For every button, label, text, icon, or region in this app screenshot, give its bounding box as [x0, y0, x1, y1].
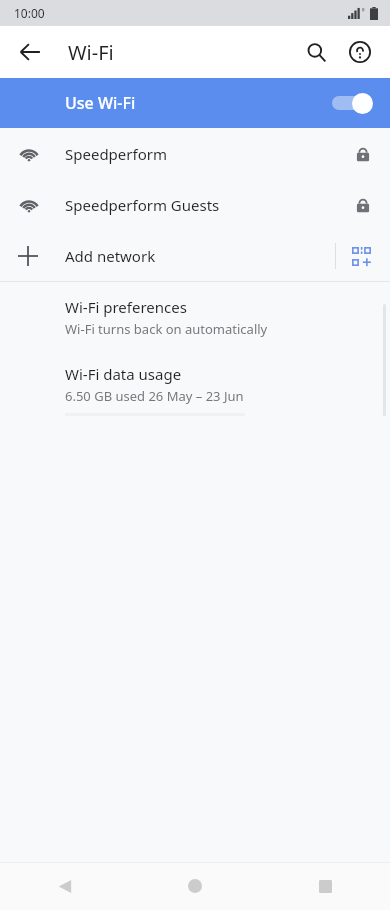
button[interactable]: Home [130, 862, 260, 910]
staticText: Use Wi-Fi [65, 92, 136, 114]
button[interactable]: Search [294, 30, 338, 74]
staticText: 6.50 GB used 26 May – 23 Jun [65, 387, 244, 405]
button[interactable]: Speedperform Guests [0, 179, 390, 230]
staticText: Speedperform [65, 144, 167, 164]
staticText: Wi-Fi turns back on automatically [65, 320, 268, 338]
button[interactable]: Scan QR code to add network [342, 237, 380, 275]
button[interactable]: Help [338, 30, 382, 74]
button[interactable]: Back [0, 862, 130, 910]
button[interactable]: Use Wi-Fi [0, 78, 390, 128]
staticText: Wi-Fi preferences [65, 297, 187, 317]
button[interactable]: Recent apps [260, 862, 390, 910]
button[interactable]: Wi-Fi data usage [0, 362, 390, 407]
button[interactable]: Wi-Fi preferences [0, 295, 390, 340]
staticText: Speedperform Guests [65, 195, 220, 215]
button[interactable]: Speedperform [0, 128, 390, 179]
button[interactable]: Add network [0, 230, 390, 281]
staticText: 10:00 [14, 5, 45, 21]
staticText: Add network [65, 246, 156, 266]
staticText: Wi-Fi [68, 39, 114, 66]
staticText: Wi-Fi data usage [65, 364, 182, 384]
button[interactable]: Back [8, 30, 52, 74]
